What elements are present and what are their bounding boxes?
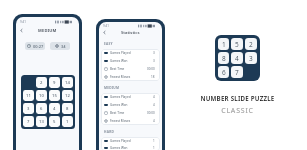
- staticText: Games Won: [110, 59, 128, 63]
- staticText: EASY: [104, 42, 113, 46]
- button[interactable]: 7: [23, 116, 34, 127]
- staticText: 1: [153, 146, 155, 150]
- button[interactable]: 15: [49, 90, 60, 101]
- button[interactable]: 5: [49, 116, 60, 127]
- staticText: 6: [40, 106, 43, 112]
- button[interactable]: Games Won: [101, 57, 160, 65]
- button[interactable]: 12: [62, 90, 73, 101]
- staticText: 4: [153, 119, 155, 123]
- button[interactable]: Best Time: [101, 65, 160, 73]
- staticText: 00:27: [33, 44, 44, 49]
- staticText: 18: [151, 75, 155, 79]
- staticText: 10: [39, 93, 44, 99]
- button[interactable]: Games Played: [101, 137, 160, 145]
- staticText: 9:41: [20, 20, 26, 24]
- staticText: 13: [39, 119, 44, 125]
- button[interactable]: Fewest Moves: [101, 73, 160, 81]
- staticText: Games Won: [110, 103, 128, 107]
- staticText: 3: [27, 106, 30, 112]
- staticText: 4: [153, 103, 155, 107]
- staticText: 15: [52, 93, 57, 99]
- staticText: 2: [40, 80, 43, 86]
- button[interactable]: 6: [36, 103, 47, 114]
- staticText: MEDIUM: [38, 28, 57, 33]
- button[interactable]: 10: [36, 90, 47, 101]
- staticText: 4: [53, 106, 56, 112]
- staticText: 8: [66, 106, 69, 112]
- button[interactable]: 14: [62, 77, 73, 88]
- button[interactable]: Back: [18, 27, 25, 34]
- button[interactable]: Games Won: [101, 101, 160, 109]
- staticText: 9: [53, 80, 56, 86]
- button[interactable]: Best Time: [101, 109, 160, 117]
- staticText: Games Played: [110, 95, 131, 99]
- staticText: 5: [235, 40, 239, 49]
- button[interactable]: 9: [49, 77, 60, 88]
- staticText: 00:00: [147, 67, 155, 71]
- staticText: Fewest Moves: [110, 119, 131, 123]
- staticText: Games Played: [110, 51, 131, 55]
- staticText: 7: [235, 68, 239, 77]
- staticText: 1: [153, 139, 155, 143]
- button[interactable]: 2: [36, 77, 47, 88]
- staticText: 4: [235, 54, 239, 63]
- staticText: 00:00: [147, 111, 155, 115]
- staticText: 34: [61, 44, 66, 49]
- staticText: NUMBER SLIDE PUZZLE: [178, 94, 297, 102]
- button[interactable]: 00:27: [25, 42, 45, 50]
- staticText: Best Time: [110, 67, 125, 71]
- button[interactable]: 13: [36, 116, 47, 127]
- staticText: 6: [222, 68, 226, 77]
- staticText: Best Time: [110, 111, 125, 115]
- staticText: HARD: [104, 130, 115, 134]
- staticText: Fewest Moves: [110, 75, 131, 79]
- button[interactable]: Back: [101, 29, 108, 36]
- staticText: Games Played: [110, 139, 131, 143]
- button[interactable]: Games Won: [101, 145, 160, 150]
- button[interactable]: 1: [62, 116, 73, 127]
- staticText: 1: [66, 119, 69, 125]
- staticText: 3: [153, 59, 155, 63]
- staticText: Statistics: [121, 30, 140, 36]
- staticText: 3: [153, 51, 155, 55]
- button[interactable]: 11: [23, 90, 34, 101]
- button[interactable]: 8: [62, 103, 73, 114]
- button[interactable]: 34: [50, 42, 70, 50]
- button[interactable]: Fewest Moves: [101, 117, 160, 125]
- staticText: CLASSIC: [178, 106, 297, 116]
- button[interactable]: 4: [49, 103, 60, 114]
- staticText: 9:41: [103, 24, 109, 28]
- staticText: 14: [65, 80, 70, 86]
- button[interactable]: Games Played: [101, 49, 160, 57]
- staticText: Games Won: [110, 146, 128, 150]
- staticText: 2: [249, 40, 253, 49]
- staticText: 5: [53, 119, 56, 125]
- staticText: MEDIUM: [104, 86, 120, 90]
- staticText: 8: [222, 54, 226, 63]
- staticText: 11: [26, 93, 31, 99]
- staticText: 4: [153, 95, 155, 99]
- staticText: 3: [249, 54, 253, 63]
- button[interactable]: 3: [23, 103, 34, 114]
- staticText: 7: [27, 119, 30, 125]
- button[interactable]: Games Played: [101, 93, 160, 101]
- staticText: 1: [222, 40, 226, 49]
- staticText: 12: [65, 93, 70, 99]
